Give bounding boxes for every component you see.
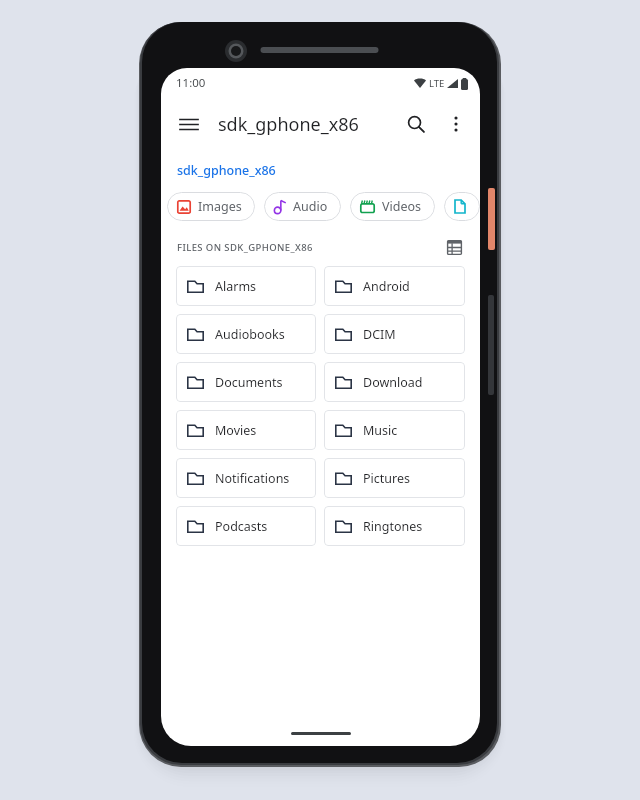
staticText: Pictures bbox=[363, 470, 410, 487]
staticText: Audio bbox=[293, 198, 328, 215]
button[interactable]: Podcasts bbox=[176, 506, 316, 546]
staticText: Ringtones bbox=[363, 518, 423, 535]
staticText: Android bbox=[363, 278, 410, 295]
button[interactable]: Images bbox=[167, 192, 255, 221]
other: Power bbox=[488, 188, 495, 250]
staticText: Images bbox=[198, 198, 242, 215]
button[interactable]: Switch view bbox=[442, 235, 466, 259]
button[interactable]: Documents bbox=[176, 362, 316, 402]
staticText: FILES ON SDK_GPHONE_X86 bbox=[177, 241, 313, 254]
button[interactable]: Audio bbox=[264, 192, 341, 221]
button[interactable]: sdk_gphone_x86 bbox=[177, 162, 276, 179]
staticText: Videos bbox=[382, 198, 422, 215]
button[interactable]: Movies bbox=[176, 410, 316, 450]
staticText: sdk_gphone_x86 bbox=[218, 112, 359, 137]
button[interactable]: Notifications bbox=[176, 458, 316, 498]
button[interactable]: Music bbox=[324, 410, 465, 450]
button[interactable]: More options bbox=[436, 104, 476, 144]
button[interactable]: Alarms bbox=[176, 266, 316, 306]
staticText: DCIM bbox=[363, 326, 396, 343]
staticText: Alarms bbox=[215, 278, 257, 295]
button[interactable]: Audiobooks bbox=[176, 314, 316, 354]
button[interactable]: Videos bbox=[350, 192, 435, 221]
button[interactable]: DCIM bbox=[324, 314, 465, 354]
staticText: Notifications bbox=[215, 470, 290, 487]
staticText: Music bbox=[363, 422, 398, 439]
staticText: sdk_gphone_x86 bbox=[177, 162, 276, 179]
staticText: Movies bbox=[215, 422, 257, 439]
button[interactable]: Ringtones bbox=[324, 506, 465, 546]
button[interactable]: Pictures bbox=[324, 458, 465, 498]
button[interactable]: Search bbox=[396, 104, 436, 144]
staticText: Download bbox=[363, 374, 423, 391]
staticText: Documents bbox=[215, 374, 283, 391]
button[interactable]: Download bbox=[324, 362, 465, 402]
button[interactable]: Open navigation drawer bbox=[169, 104, 209, 144]
staticText: Audiobooks bbox=[215, 326, 285, 343]
staticText: 11:00 bbox=[176, 75, 206, 91]
button[interactable]: Android bbox=[324, 266, 465, 306]
button[interactable]: Documents bbox=[444, 192, 480, 221]
staticText: Podcasts bbox=[215, 518, 268, 535]
staticText: LTE bbox=[429, 77, 445, 90]
